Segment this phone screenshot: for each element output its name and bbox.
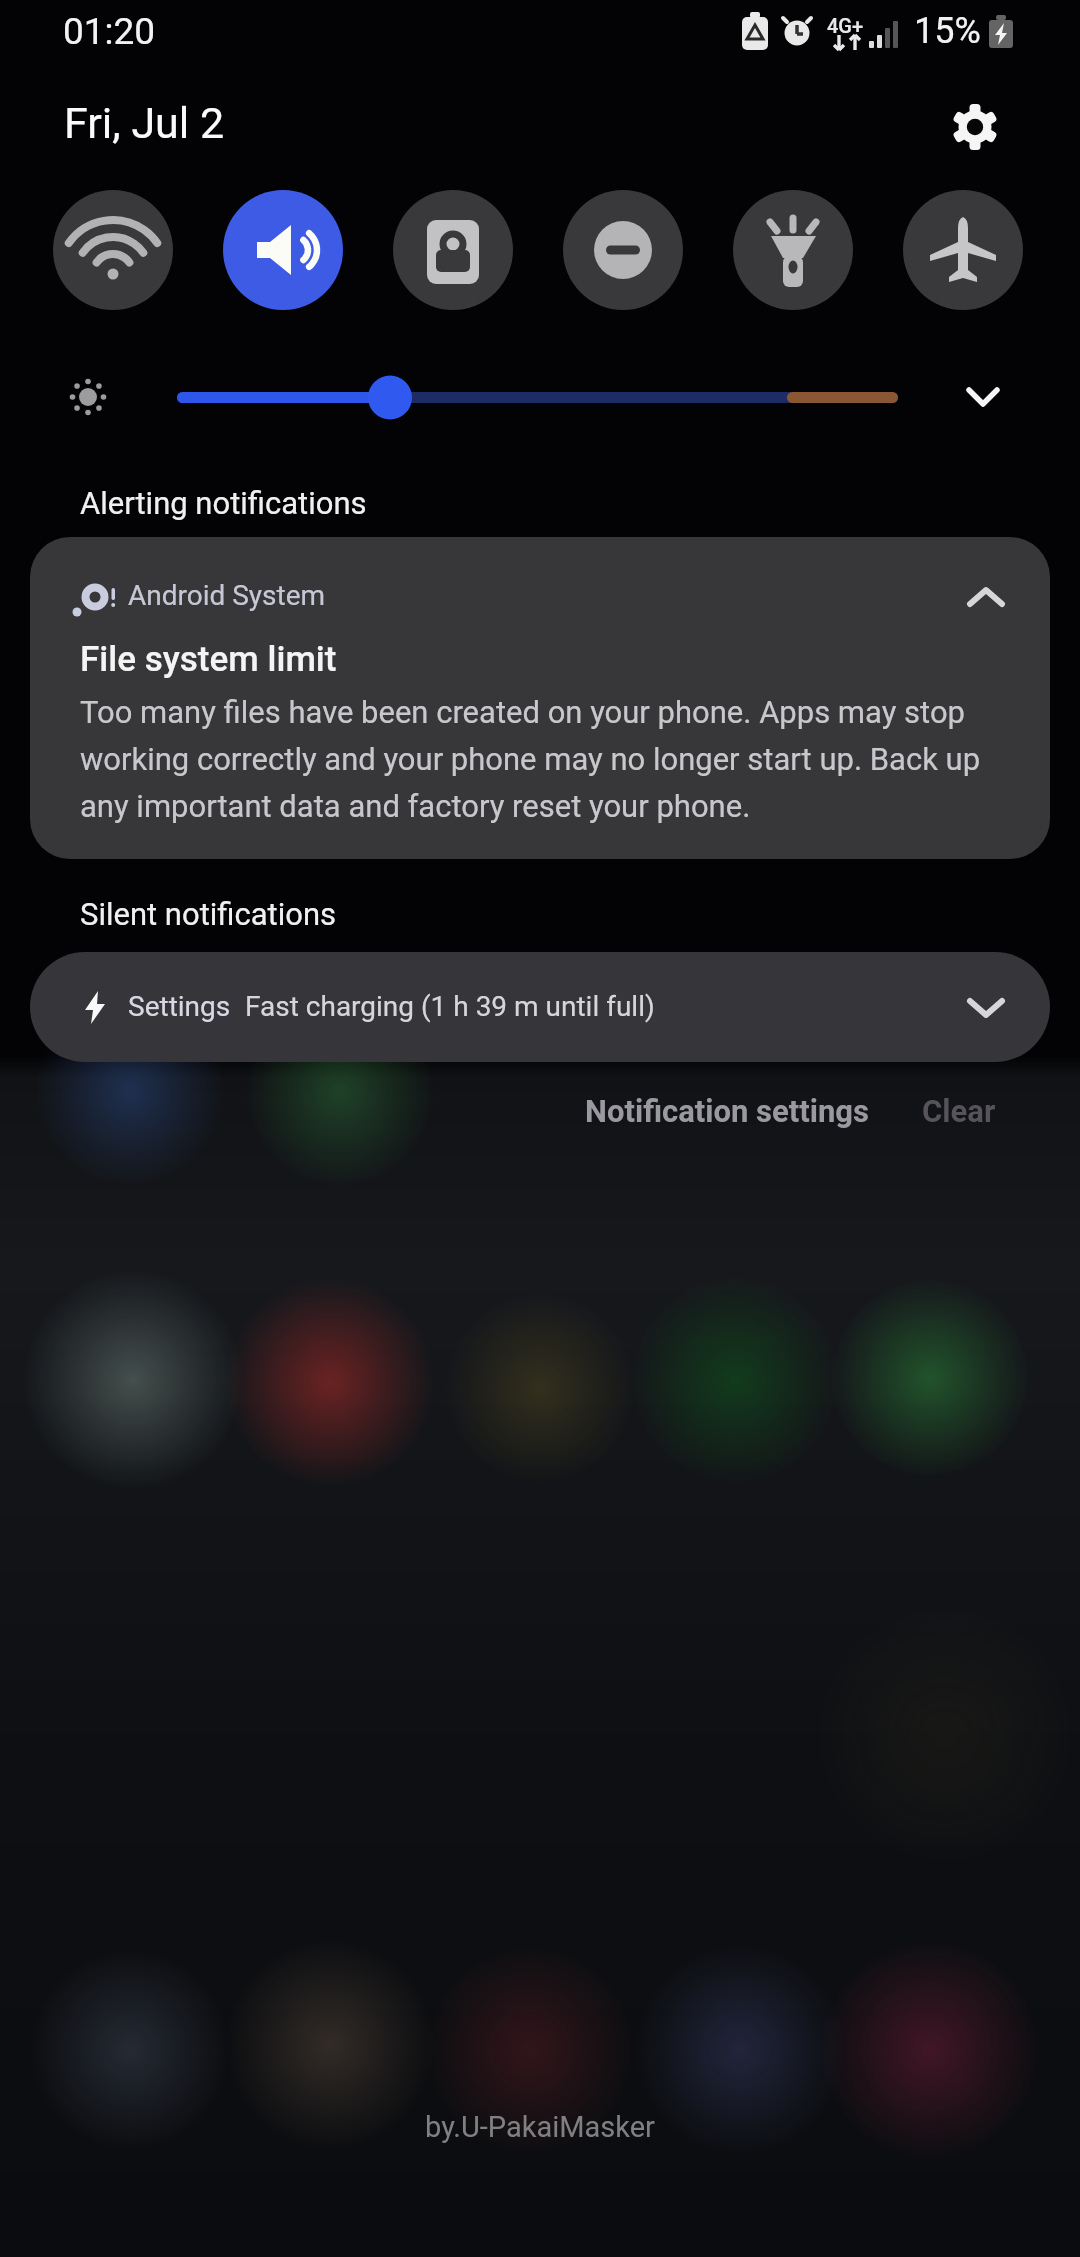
button[interactable]: Settings: [30, 952, 1050, 1062]
button[interactable]: [223, 190, 343, 310]
staticText: 01:20: [63, 10, 156, 53]
staticText: Fast charging (1 h 39 m until full): [245, 990, 655, 1023]
staticText: Settings: [128, 990, 231, 1023]
button[interactable]: Notification settings: [585, 1093, 869, 1129]
button[interactable]: Clear: [922, 1093, 996, 1129]
staticText: Fri, Jul 2: [64, 98, 225, 148]
button[interactable]: Android System: [30, 537, 1050, 859]
button[interactable]: [393, 190, 513, 310]
button[interactable]: [733, 190, 853, 310]
staticText: Too many files have been created on your…: [80, 694, 981, 825]
button[interactable]: [53, 190, 173, 310]
button[interactable]: [955, 370, 1011, 426]
button[interactable]: [563, 190, 683, 310]
staticText: Clear: [922, 1093, 996, 1129]
staticText: 15%: [914, 10, 981, 52]
button[interactable]: [903, 190, 1023, 310]
staticText: 4G+: [827, 14, 864, 37]
staticText: Notification settings: [585, 1093, 869, 1129]
staticText: Silent notifications: [80, 896, 337, 932]
button[interactable]: [950, 102, 1000, 152]
staticText: by.U-PakaiMasker: [425, 2110, 655, 2144]
staticText: Android System: [128, 579, 326, 612]
staticText: File system limit: [80, 639, 337, 680]
staticText: Alerting notifications: [80, 485, 367, 521]
